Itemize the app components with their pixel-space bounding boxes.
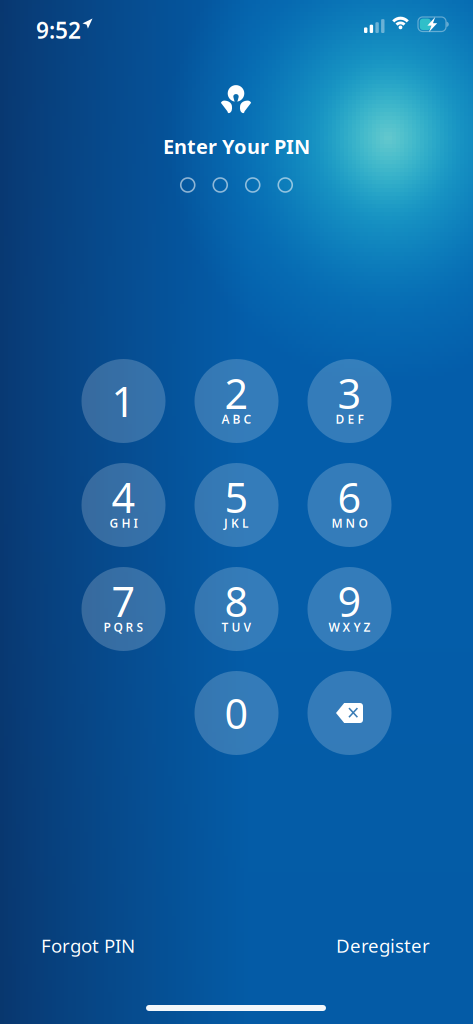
button[interactable]: 8 xyxy=(194,567,278,651)
staticText: 6 xyxy=(337,470,361,524)
staticText: T U V xyxy=(221,619,251,635)
button[interactable]: 0 xyxy=(194,671,278,755)
staticText: Enter Your PIN xyxy=(163,133,310,160)
staticText: 1 xyxy=(111,374,135,428)
staticText: P Q R S xyxy=(103,619,143,635)
button[interactable]: 4 xyxy=(81,463,165,547)
staticText: 7 xyxy=(111,574,135,628)
button[interactable]: 1 xyxy=(81,359,165,443)
staticText: 8 xyxy=(224,574,248,628)
button[interactable]: 2 xyxy=(194,359,278,443)
staticText: 4 xyxy=(111,470,135,524)
staticText: D E F xyxy=(335,411,363,427)
staticText: 0 xyxy=(224,686,248,740)
staticText: W X Y Z xyxy=(328,619,370,635)
staticText: 3 xyxy=(337,366,361,420)
staticText: M N O xyxy=(331,515,367,531)
staticText: A B C xyxy=(221,411,251,427)
button[interactable]: 6 xyxy=(307,463,391,547)
button[interactable]: Deregister xyxy=(336,933,430,958)
button[interactable]: 7 xyxy=(81,567,165,651)
staticText: G H I xyxy=(109,515,137,531)
button[interactable]: 9 xyxy=(307,567,391,651)
staticText: J K L xyxy=(224,515,249,531)
button[interactable]: 3 xyxy=(307,359,391,443)
staticText: Forgot PIN xyxy=(41,933,135,958)
button[interactable]: 5 xyxy=(194,463,278,547)
staticText: 2 xyxy=(224,366,248,420)
button[interactable]: Forgot PIN xyxy=(41,933,135,958)
staticText: 5 xyxy=(224,470,248,524)
staticText: Deregister xyxy=(336,933,430,958)
staticText: 9 xyxy=(337,574,361,628)
staticText: 9:52 xyxy=(36,15,81,45)
button[interactable]: Delete xyxy=(307,671,391,755)
